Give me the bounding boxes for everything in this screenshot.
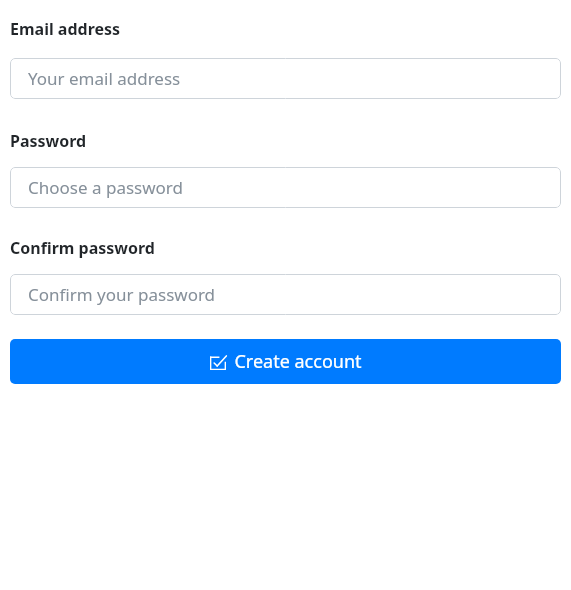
staticText: Choose a password [28, 176, 183, 199]
staticText: Create account [234, 349, 362, 374]
staticText: Confirm your password [28, 283, 216, 306]
staticText: Your email address [28, 67, 181, 90]
staticText: Confirm password [10, 237, 155, 259]
staticText: Password [10, 130, 87, 152]
button[interactable]: Confirm your password [10, 274, 561, 315]
staticText: Email address [10, 18, 121, 40]
button[interactable]: Create account [10, 339, 561, 384]
button[interactable]: Your email address [10, 58, 561, 99]
button[interactable]: Choose a password [10, 167, 561, 208]
